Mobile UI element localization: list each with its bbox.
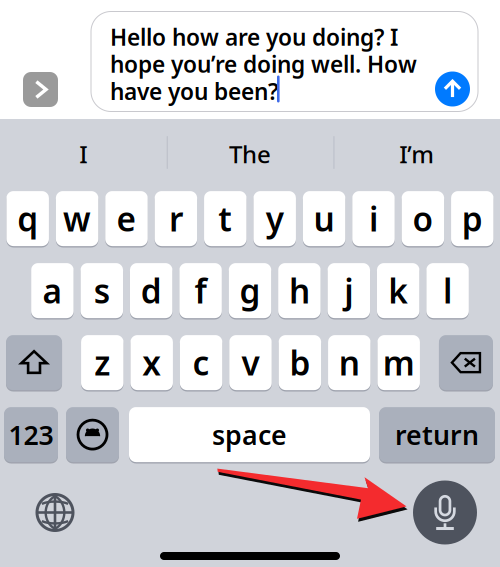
staticText: w [63,196,91,241]
button[interactable]: e [105,190,148,248]
staticText: u [314,196,335,241]
staticText: l [443,268,452,313]
button[interactable]: b [279,334,321,392]
staticText: g [239,268,260,313]
button[interactable]: u [303,190,345,248]
staticText: 123 [8,417,53,452]
staticText: Hello how are you doing? I hope you’re d… [110,22,417,106]
staticText: o [412,196,433,241]
button[interactable]: w [56,190,98,248]
staticText: e [116,196,136,241]
staticText: y [266,196,284,241]
button[interactable]: Delete [439,334,493,392]
button[interactable]: z [81,334,124,392]
button[interactable]: p [451,190,493,248]
button[interactable]: m [377,334,420,392]
button[interactable]: k [377,262,419,320]
button[interactable]: I [0,119,167,189]
staticText: The [229,138,271,170]
button[interactable]: Emoji [66,406,119,464]
button[interactable]: Send [435,71,470,106]
staticText: i [369,196,378,241]
button[interactable]: v [229,334,272,392]
button[interactable]: Shift [6,334,62,392]
button[interactable]: q [6,190,49,248]
button[interactable]: d [130,262,172,320]
staticText: f [195,268,207,313]
button[interactable]: Numbers [4,406,58,464]
staticText: v [241,340,259,385]
staticText: d [141,268,162,313]
button[interactable]: s [81,262,123,320]
button[interactable]: j [327,262,370,320]
staticText: space [212,417,287,452]
button[interactable]: Dictation [413,480,477,544]
staticText: j [344,268,353,313]
button[interactable]: space [129,406,370,464]
staticText: s [94,268,110,313]
button[interactable]: Return [379,406,495,464]
button[interactable]: y [253,190,296,248]
staticText: p [462,196,483,241]
staticText: h [289,268,310,313]
button[interactable]: a [31,262,74,320]
staticText: n [339,340,360,385]
button[interactable]: o [402,190,444,248]
staticText: z [94,340,110,385]
staticText: I [79,138,87,170]
button[interactable]: The [167,119,333,189]
button[interactable]: c [180,334,222,392]
staticText: I’m [399,138,434,170]
staticText: t [218,196,232,241]
staticText: b [289,340,310,385]
button[interactable]: g [229,262,271,320]
button[interactable]: r [155,190,197,248]
staticText: r [169,196,183,241]
button[interactable]: f [179,262,222,320]
staticText: return [395,417,479,452]
button[interactable]: n [328,334,371,392]
button[interactable]: i [352,190,395,248]
button[interactable]: t [204,190,246,248]
button[interactable]: I’m [333,119,500,189]
staticText: q [17,196,38,241]
button[interactable]: Expand [23,72,58,107]
staticText: a [42,268,62,313]
button[interactable]: x [130,334,173,392]
staticText: m [383,340,415,385]
button[interactable]: Next keyboard [30,487,80,537]
staticText: c [193,340,210,385]
staticText: x [142,340,161,385]
staticText: k [388,268,408,313]
button[interactable]: h [278,262,321,320]
button[interactable]: l [426,262,469,320]
